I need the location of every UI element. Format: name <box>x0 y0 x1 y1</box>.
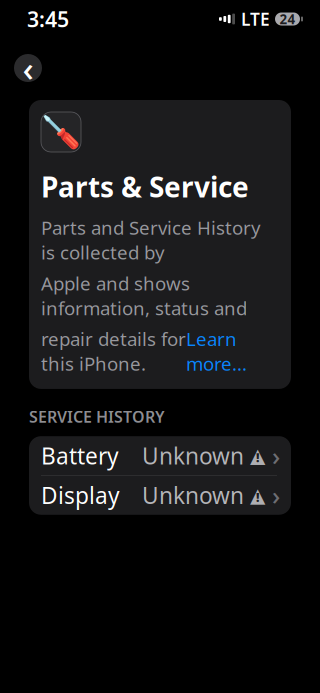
button[interactable]: Battery <box>29 436 291 475</box>
staticText: repair details for this iPhone. <box>41 326 186 376</box>
staticText: Apple and shows information, status and <box>41 271 247 320</box>
staticText: Parts and Service History is collected b… <box>41 215 261 265</box>
button[interactable]: Learn more... <box>186 326 247 376</box>
staticText: Display <box>41 480 120 510</box>
staticText: 🪛 <box>41 114 81 150</box>
staticText: ▲ <box>250 444 265 467</box>
staticText: ▲ <box>250 484 265 507</box>
staticText: Parts & Service <box>41 168 249 205</box>
staticText: ! <box>256 489 259 505</box>
staticText: LTE <box>241 7 270 30</box>
button[interactable]: Display <box>29 476 291 515</box>
staticText: 24 <box>279 10 295 28</box>
staticText: › <box>272 478 280 512</box>
staticText: Learn more... <box>186 326 247 376</box>
staticText: › <box>272 439 280 472</box>
staticText: 3:45 <box>27 5 69 33</box>
staticText: Unknown <box>142 480 244 510</box>
staticText: SERVICE HISTORY <box>29 406 165 427</box>
staticText: ! <box>256 450 259 466</box>
button[interactable]: Back <box>14 54 42 82</box>
staticText: ‹ <box>22 45 33 91</box>
staticText: Battery <box>41 441 119 471</box>
staticText: Unknown <box>142 441 244 471</box>
